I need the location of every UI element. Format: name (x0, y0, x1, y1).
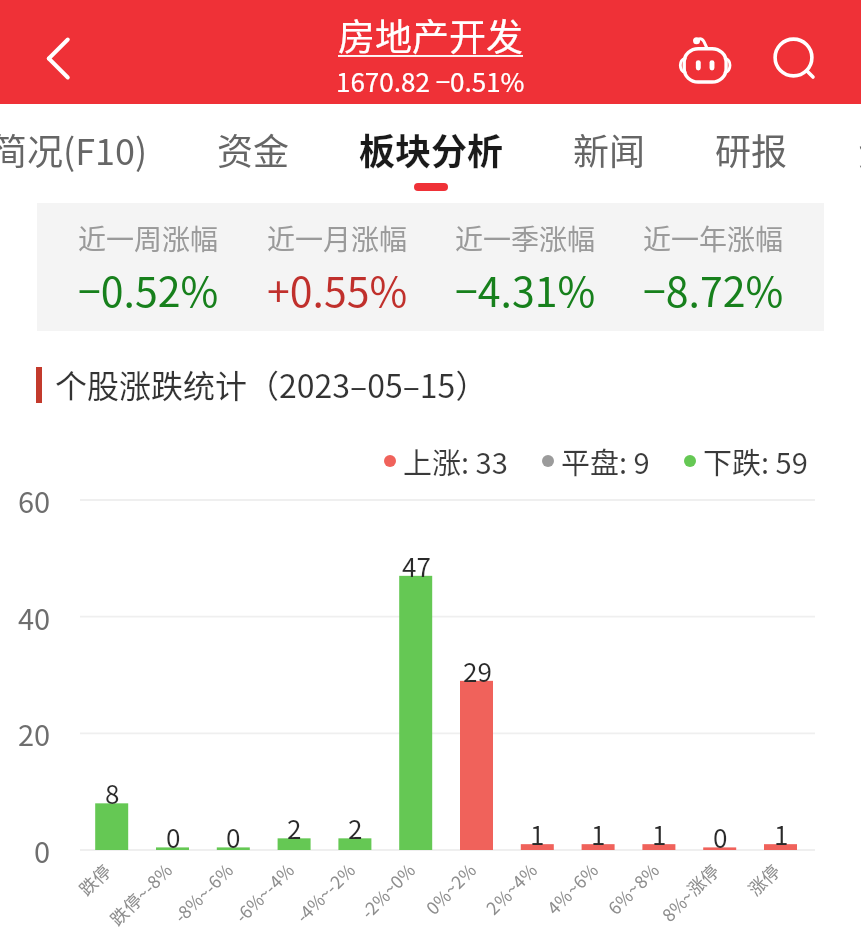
staticText: 简况(F10) (0, 123, 148, 175)
staticText: 近一季涨幅 (455, 218, 596, 259)
staticText: 20 (18, 712, 51, 754)
staticText: 近一周涨幅 (78, 218, 219, 259)
staticText: 资金 (217, 123, 290, 175)
button[interactable]: Search (757, 18, 833, 94)
staticText: 29 (463, 652, 492, 690)
staticText: 1 (530, 815, 545, 853)
staticText: 0 (34, 829, 51, 871)
staticText: 资金流 (858, 123, 861, 175)
staticText: 房地产开发 (338, 8, 523, 62)
staticText: 上涨: 33 (403, 440, 508, 482)
staticText: 下跌: 59 (703, 440, 808, 482)
staticText: 1 (591, 815, 606, 853)
staticText: −8.72% (643, 259, 784, 318)
button[interactable]: 资金流 (822, 104, 861, 194)
staticText: 1 (652, 815, 667, 853)
staticText: +0.55% (267, 259, 408, 318)
staticText: 60 (18, 479, 51, 521)
staticText: 板块分析 (359, 123, 504, 175)
staticText: 近一年涨幅 (643, 218, 784, 259)
staticText: 研报 (715, 123, 788, 175)
button[interactable]: 研报 (680, 104, 822, 194)
staticText: 新闻 (573, 123, 646, 175)
staticText: 1 (774, 815, 789, 853)
button[interactable]: 上涨: 33 (384, 440, 508, 482)
staticText: −4.31% (455, 259, 596, 318)
button[interactable]: 下跌: 59 (684, 440, 808, 482)
staticText: 1670.82 −0.51% (336, 62, 525, 100)
staticText: 47 (402, 547, 431, 585)
staticText: 0 (226, 818, 241, 856)
staticText: 个股涨跌统计（2023–05–15） (55, 361, 488, 407)
button[interactable]: AI assistant (668, 20, 744, 96)
staticText: 2 (348, 809, 363, 847)
staticText: 近一月涨幅 (267, 218, 408, 259)
button[interactable]: 新闻 (538, 104, 680, 194)
staticText: 0 (166, 818, 181, 856)
staticText: 40 (18, 596, 51, 638)
button[interactable]: 简况(F10) (0, 104, 182, 194)
staticText: 2 (287, 809, 302, 847)
button[interactable]: 平盘: 9 (542, 440, 650, 482)
staticText: 0 (713, 818, 728, 856)
staticText: −0.52% (78, 259, 219, 318)
staticText: 8 (105, 774, 120, 812)
button[interactable]: Back (22, 23, 93, 94)
button[interactable]: 板块分析 (324, 104, 538, 194)
button[interactable]: 资金 (182, 104, 324, 194)
staticText: 平盘: 9 (561, 440, 650, 482)
